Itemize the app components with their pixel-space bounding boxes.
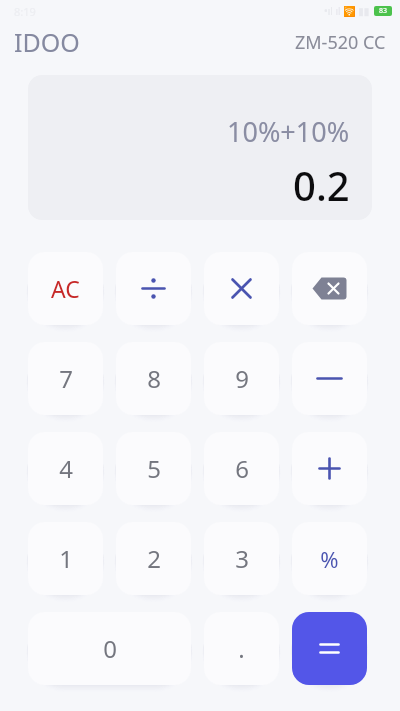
staticText: ZM-520 CC — [295, 30, 386, 55]
button[interactable]: 4 — [28, 432, 103, 505]
button[interactable]: 3 — [204, 522, 279, 595]
button[interactable]: 0 — [28, 612, 191, 685]
staticText: . — [238, 632, 245, 665]
button[interactable]: % — [292, 522, 367, 595]
staticText: 4 — [59, 452, 73, 485]
button[interactable]: 8 — [116, 342, 191, 415]
staticText: 5 — [147, 452, 161, 485]
button[interactable]: 9 — [204, 342, 279, 415]
button[interactable]: 5 — [116, 432, 191, 505]
staticText: 6 — [235, 452, 249, 485]
staticText: 83 — [379, 6, 388, 16]
staticText: 8:19 — [14, 4, 36, 19]
button[interactable]: Equals — [292, 612, 367, 685]
button[interactable]: Delete — [292, 252, 367, 325]
button[interactable]: 6 — [204, 432, 279, 505]
staticText: 10%+10% — [227, 113, 350, 150]
button[interactable]: 2 — [116, 522, 191, 595]
staticText: AC — [51, 273, 80, 304]
button[interactable]: . — [204, 612, 279, 685]
button[interactable]: Multiply — [204, 252, 279, 325]
staticText: •ıl ıl 🛜 ▮▮ — [324, 4, 370, 18]
button[interactable]: Divide — [116, 252, 191, 325]
button[interactable]: 1 — [28, 522, 103, 595]
staticText: 0 — [103, 632, 117, 665]
button[interactable]: Plus — [292, 432, 367, 505]
staticText: % — [320, 544, 339, 574]
staticText: IDOO — [14, 25, 80, 59]
button[interactable]: Minus — [292, 342, 367, 415]
staticText: 2 — [147, 542, 161, 575]
button[interactable]: 10%+10% — [28, 75, 372, 220]
button[interactable]: AC — [28, 252, 103, 325]
staticText: 1 — [59, 542, 73, 575]
button[interactable]: 7 — [28, 342, 103, 415]
staticText: 3 — [235, 542, 249, 575]
staticText: 0.2 — [293, 158, 350, 212]
staticText: 9 — [235, 362, 249, 395]
staticText: 8 — [147, 362, 161, 395]
staticText: 7 — [59, 362, 73, 395]
